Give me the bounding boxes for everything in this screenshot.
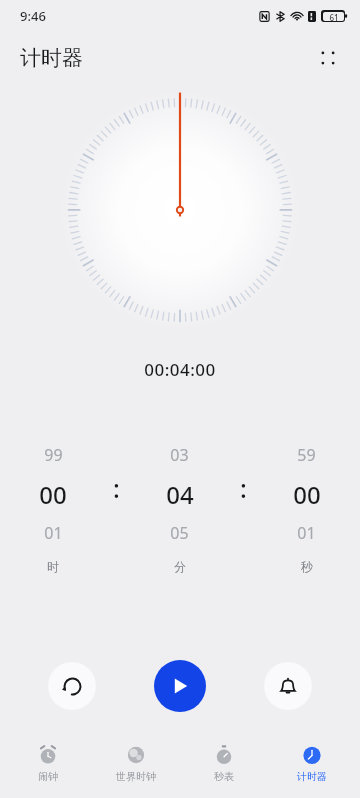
staticText: 秒表 <box>214 770 234 783</box>
staticText: 99 <box>44 444 63 466</box>
staticText: 01 <box>44 522 63 544</box>
button[interactable]: Reset <box>48 662 96 710</box>
staticText: 01 <box>297 522 316 544</box>
button[interactable]: 闹钟 <box>8 738 88 792</box>
staticText: 时 <box>47 559 59 574</box>
button[interactable]: More options <box>306 36 350 80</box>
button[interactable]: 世界时钟 <box>96 738 176 792</box>
staticText: : <box>240 471 247 505</box>
staticText: 秒 <box>301 559 313 574</box>
button[interactable]: 59 <box>253 438 360 590</box>
button[interactable]: Ringtone <box>264 662 312 710</box>
staticText: 闹钟 <box>38 770 58 783</box>
staticText: 分 <box>174 559 186 574</box>
button[interactable]: 计时器 <box>272 738 352 792</box>
button[interactable]: 99 <box>0 438 106 590</box>
staticText: 计时器 <box>297 770 327 783</box>
button[interactable]: 03 <box>126 438 233 590</box>
staticText: 00:04:00 <box>144 358 216 381</box>
staticText: 00 <box>39 478 67 511</box>
staticText: 世界时钟 <box>116 770 156 783</box>
button[interactable]: 秒表 <box>184 738 264 792</box>
staticText: 03 <box>170 444 189 466</box>
staticText: 05 <box>170 522 189 544</box>
staticText: 计时器 <box>20 45 83 71</box>
staticText: 9:46 <box>20 7 46 25</box>
staticText: 61 <box>329 12 339 21</box>
staticText: 00 <box>293 478 321 511</box>
button[interactable]: Start <box>154 660 206 712</box>
staticText: 04 <box>166 478 194 511</box>
staticText: 59 <box>297 444 316 466</box>
staticText: : <box>113 471 120 505</box>
